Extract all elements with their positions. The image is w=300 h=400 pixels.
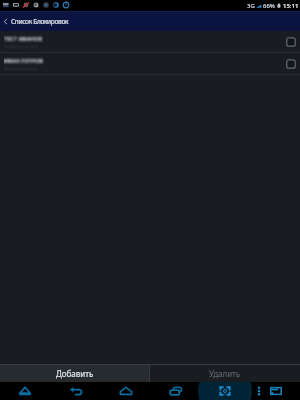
- button[interactable]: Multi window: [267, 382, 285, 400]
- other: More options: [253, 385, 265, 397]
- button[interactable]: More options: [250, 382, 268, 400]
- button[interactable]: Home: [117, 382, 135, 400]
- button[interactable]: Collapse: [16, 382, 34, 400]
- staticText: ТЕСТ ИВАНОВ: [4, 35, 43, 43]
- other: Screenshot: [218, 384, 232, 398]
- other: Multi window: [269, 384, 283, 398]
- button[interactable]: Select item: [286, 37, 296, 47]
- staticText: 66%: [263, 2, 275, 10]
- other: Recent apps: [169, 384, 183, 398]
- other: Back: [69, 384, 83, 398]
- button[interactable]: Back: [67, 382, 85, 400]
- other: Collapse: [18, 384, 32, 398]
- button[interactable]: Back: [1, 17, 10, 26]
- button[interactable]: ИВАН ПЕТРОВ: [0, 53, 300, 74]
- button[interactable]: Удалить: [150, 365, 300, 382]
- other: Home: [119, 384, 133, 398]
- staticText: Удалить: [209, 368, 241, 379]
- staticText: Список Блокировок: [11, 17, 69, 26]
- button[interactable]: Добавить: [0, 365, 149, 382]
- staticText: ИВАН ПЕТРОВ: [4, 57, 44, 65]
- button[interactable]: Select item: [286, 59, 296, 69]
- staticText: 3G: [247, 2, 255, 10]
- button[interactable]: Recent apps: [167, 382, 185, 400]
- staticText: 15:11: [283, 2, 299, 10]
- staticText: Входящие звонки: [4, 44, 38, 49]
- staticText: Входящие звонки: [4, 66, 38, 71]
- button[interactable]: Screenshot: [216, 382, 234, 400]
- staticText: Добавить: [56, 368, 94, 379]
- button[interactable]: ТЕСТ ИВАНОВ: [0, 31, 300, 52]
